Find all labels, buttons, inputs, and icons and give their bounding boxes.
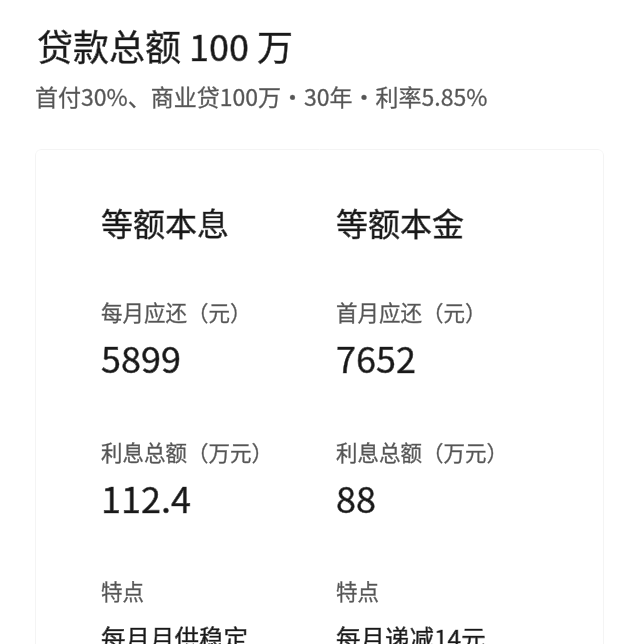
staticText: 每月月供稳定	[101, 620, 248, 644]
staticText: 7652	[336, 331, 416, 383]
staticText: 利息总额（万元）	[101, 436, 274, 467]
button[interactable]: 等额本息	[35, 149, 270, 644]
staticText: 首月应还（元）	[336, 296, 487, 327]
staticText: 首付30%、商业贷100万·30年·利率5.85%	[35, 79, 488, 112]
staticText: 特点	[336, 575, 380, 606]
staticText: 每月应还（元）	[101, 296, 252, 327]
staticText: 贷款总额 100 万	[37, 19, 294, 71]
staticText: 首月应还（元）	[336, 296, 487, 327]
staticText: 5899	[101, 331, 181, 383]
staticText: 7652	[336, 331, 416, 383]
staticText: 特点	[101, 575, 145, 606]
staticText: 每月递减14元	[336, 620, 486, 644]
staticText: 112.4	[101, 471, 191, 523]
staticText: 利息总额（万元）	[101, 436, 274, 467]
staticText: 88	[336, 471, 376, 523]
staticText: 88	[336, 471, 376, 523]
staticText: 等额本息	[101, 199, 230, 245]
staticText: 每月月供稳定	[101, 620, 248, 644]
button[interactable]: 等额本金	[270, 149, 505, 644]
staticText: 112.4	[101, 471, 191, 523]
staticText: 5899	[101, 331, 181, 383]
staticText: 等额本息	[101, 199, 230, 245]
staticText: 特点	[101, 575, 145, 606]
staticText: 特点	[336, 575, 380, 606]
staticText: 每月递减14元	[336, 620, 486, 644]
staticText: 每月应还（元）	[101, 296, 252, 327]
staticText: 利息总额（万元）	[336, 436, 509, 467]
staticText: 首付30%、商业贷100万·30年·利率5.85%	[35, 79, 488, 112]
staticText: 等额本金	[336, 199, 465, 245]
staticText: 贷款总额 100 万	[37, 19, 294, 71]
staticText: 利息总额（万元）	[336, 436, 509, 467]
staticText: 等额本金	[336, 199, 465, 245]
